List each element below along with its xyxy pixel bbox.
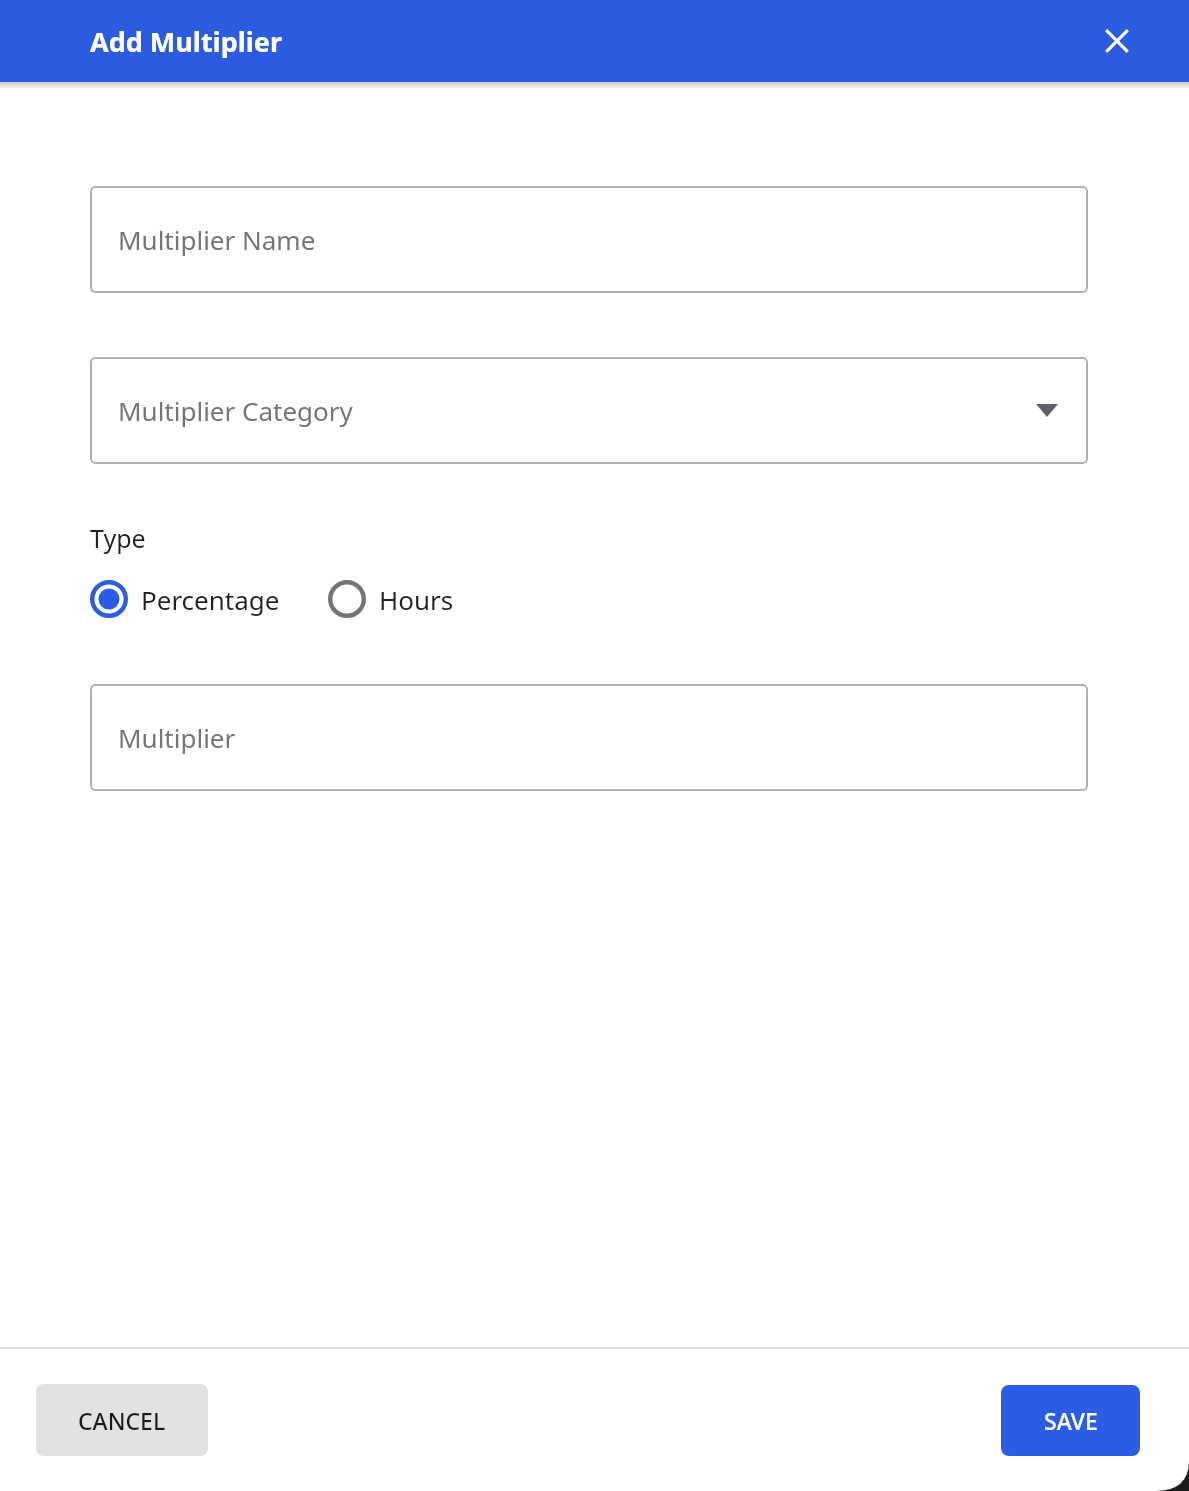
button[interactable]: CANCEL [36, 1384, 208, 1456]
staticText: CANCEL [78, 1405, 166, 1436]
button[interactable]: Multiplier Category [90, 357, 1088, 464]
staticText: Multiplier Category [118, 393, 353, 428]
staticText: Add Multiplier [90, 23, 283, 60]
button[interactable]: Hours [323, 574, 459, 624]
button[interactable]: Close [1095, 19, 1139, 63]
staticText: Type [90, 521, 146, 555]
staticText: Multiplier [118, 720, 236, 755]
staticText: Percentage [141, 582, 280, 617]
button[interactable]: Multiplier Name [90, 186, 1088, 293]
staticText: Hours [379, 582, 454, 617]
staticText: SAVE [1044, 1405, 1098, 1436]
button[interactable]: SAVE [1001, 1385, 1140, 1456]
staticText: Multiplier Name [118, 222, 316, 257]
button[interactable]: Percentage [85, 574, 285, 624]
button[interactable]: Multiplier [90, 684, 1088, 791]
